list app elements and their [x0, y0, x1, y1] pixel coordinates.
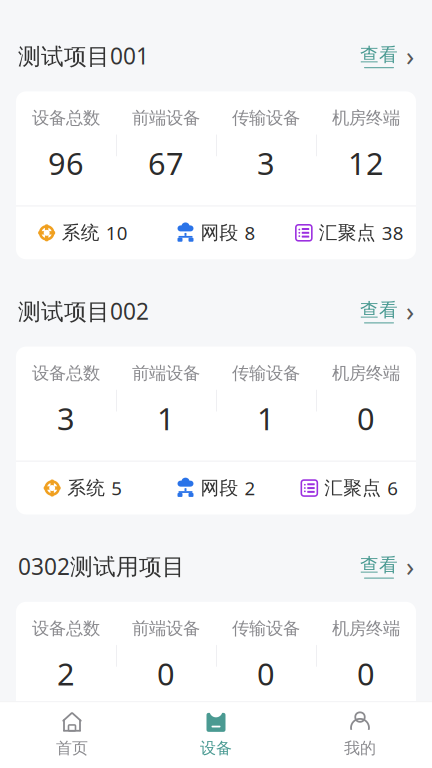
staticText: 汇聚点 — [324, 477, 381, 499]
staticText: 首页 — [56, 738, 88, 758]
staticText: 传输设备 — [232, 363, 300, 384]
staticText: 前端设备 — [132, 107, 200, 129]
staticText: 测试项目001 — [18, 41, 149, 71]
staticText: 传输设备 — [232, 618, 300, 639]
staticText: 0 — [257, 653, 275, 694]
staticText: 前端设备 — [132, 618, 200, 639]
staticText: 8 — [244, 220, 255, 245]
staticText: 1 — [257, 398, 275, 439]
staticText: 0302测试用项目 — [18, 551, 185, 581]
staticText: 设备总数 — [32, 363, 100, 384]
button[interactable]: 设备 — [144, 702, 288, 768]
staticText: 96 — [48, 143, 84, 183]
staticText: 6 — [387, 476, 398, 500]
staticText: 38 — [382, 220, 404, 245]
staticText: 我的 — [344, 738, 376, 758]
staticText: 5 — [111, 476, 122, 500]
staticText: 10 — [106, 220, 128, 245]
staticText: 系统 — [62, 221, 100, 244]
staticText: 查看 — [360, 43, 398, 66]
staticText: 测试项目002 — [18, 296, 149, 326]
staticText: › — [406, 38, 414, 73]
staticText: 机房终端 — [332, 363, 400, 384]
staticText: 网段 — [200, 221, 238, 244]
staticText: 12 — [348, 143, 384, 183]
staticText: 3 — [257, 143, 275, 183]
staticText: 系统 — [67, 477, 105, 499]
button[interactable]: 首页 — [0, 702, 144, 768]
staticText: 设备总数 — [32, 618, 100, 639]
staticText: 0 — [157, 653, 175, 694]
button[interactable]: 查看 — [350, 289, 414, 333]
button[interactable]: 查看 — [350, 34, 414, 77]
staticText: 前端设备 — [132, 363, 200, 384]
staticText: 1 — [157, 398, 175, 439]
staticText: 汇聚点 — [319, 221, 376, 244]
staticText: 0 — [357, 398, 375, 439]
button[interactable]: 我的 — [288, 702, 432, 768]
staticText: 查看 — [360, 554, 398, 577]
staticText: 机房终端 — [332, 618, 400, 639]
staticText: 查看 — [360, 298, 398, 321]
button[interactable]: 查看 — [350, 544, 414, 588]
staticText: 设备总数 — [32, 107, 100, 129]
staticText: 设备 — [200, 738, 232, 758]
staticText: 2 — [244, 476, 255, 500]
staticText: 0 — [357, 653, 375, 694]
staticText: 机房终端 — [332, 107, 400, 129]
staticText: 67 — [148, 143, 184, 183]
staticText: › — [406, 548, 414, 584]
staticText: 3 — [57, 398, 75, 439]
staticText: › — [406, 293, 414, 329]
staticText: 2 — [57, 653, 75, 694]
staticText: 传输设备 — [232, 107, 300, 129]
staticText: 网段 — [200, 477, 238, 499]
